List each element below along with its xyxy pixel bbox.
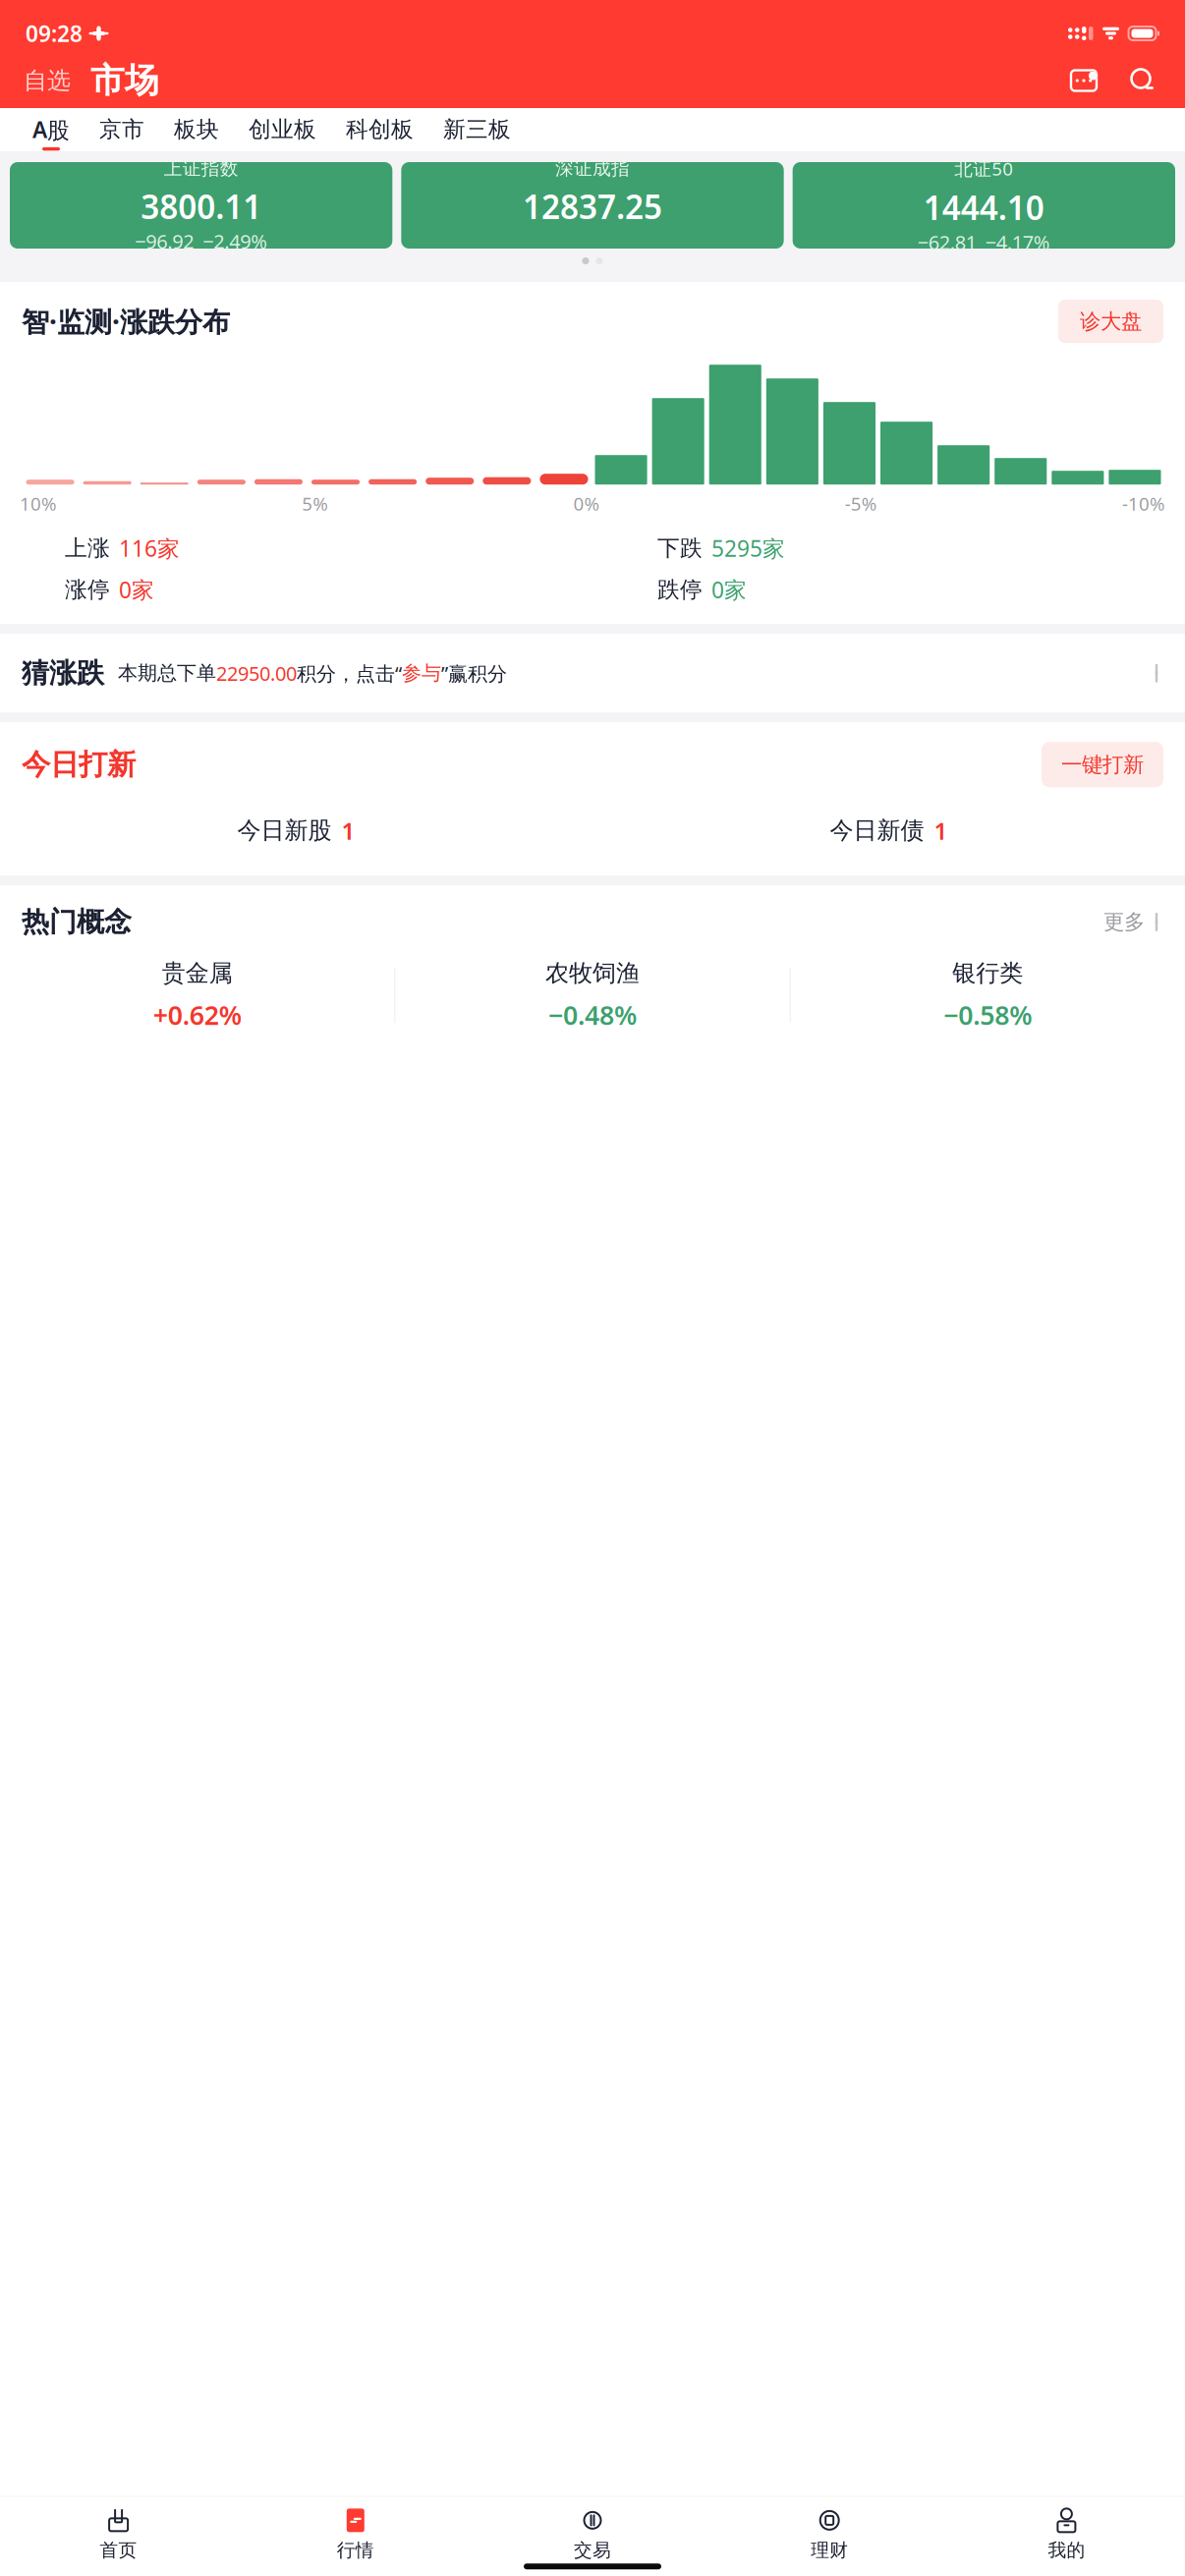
staticText: 一键打新 (1061, 752, 1144, 778)
button[interactable]: 今日新债 (592, 805, 1185, 856)
staticText: 1 (341, 815, 355, 846)
staticText: −2.49% (203, 228, 267, 254)
staticText: 农牧饲渔 (545, 959, 640, 988)
button[interactable]: 首页 (0, 2505, 237, 2563)
staticText: 热门概念 (22, 905, 132, 939)
button[interactable]: 交易 (474, 2505, 711, 2563)
staticText: 积分，点击“ (297, 660, 402, 686)
staticText: 10% (20, 491, 57, 516)
staticText: 0家 (119, 575, 154, 604)
staticText: 更多 (1103, 909, 1145, 935)
button[interactable]: 一键打新 (1042, 742, 1163, 787)
staticText: 本期总下单 (118, 661, 216, 685)
staticText: 22950.00 (216, 660, 297, 686)
staticText: 5% (302, 491, 328, 516)
staticText: 智·监测·涨跌分布 (22, 303, 230, 340)
staticText: 今日新债 (830, 816, 924, 845)
staticText: A股 (32, 115, 70, 144)
staticText: 今日新股 (237, 816, 332, 845)
staticText: 今日打新 (22, 747, 136, 782)
staticText: 板块 (174, 116, 219, 143)
button[interactable]: Search (1124, 62, 1161, 99)
staticText: 交易 (574, 2539, 611, 2561)
staticText: 3800.11 (141, 185, 262, 228)
button[interactable]: 市场 (90, 58, 159, 103)
staticText: ”赢积分 (441, 660, 507, 686)
staticText: 诊大盘 (1080, 308, 1142, 334)
staticText: 1444.10 (923, 186, 1044, 229)
staticText: 自选 (24, 66, 71, 95)
button[interactable]: 深证成指 (401, 162, 784, 249)
button[interactable]: 理财 (711, 2505, 948, 2563)
staticText: 上证指数 (164, 157, 238, 180)
staticText: 理财 (811, 2539, 848, 2561)
button[interactable]: 自选 (24, 60, 71, 101)
button[interactable]: 贵金属 (0, 955, 394, 1036)
staticText: −96.92 (135, 228, 194, 254)
button[interactable]: 银行类 (791, 955, 1185, 1036)
staticText: 参与 (402, 661, 441, 685)
staticText: 首页 (100, 2539, 137, 2561)
button[interactable]: Messages (1063, 62, 1104, 99)
button[interactable]: 猜涨跌 (0, 634, 1185, 712)
staticText: 新三板 (443, 116, 511, 143)
staticText: 跌停 (657, 576, 703, 603)
staticText: 0% (573, 491, 600, 516)
staticText: 猜涨跌 (22, 656, 104, 690)
staticText: 下跌 (657, 535, 703, 562)
staticText: 贵金属 (162, 959, 233, 988)
staticText: −4.17% (985, 229, 1050, 255)
button[interactable]: 创业板 (234, 110, 331, 149)
staticText: 5295家 (711, 533, 785, 563)
button[interactable]: 科创板 (331, 110, 428, 149)
staticText: 创业板 (249, 116, 316, 143)
staticText: −0.48% (548, 997, 637, 1032)
button[interactable]: 板块 (159, 110, 234, 149)
button[interactable]: 农牧饲渔 (395, 955, 790, 1036)
button[interactable]: 京市 (85, 110, 159, 149)
button[interactable]: 我的 (948, 2505, 1185, 2563)
staticText: 上涨 (65, 535, 110, 562)
button[interactable]: A股 (18, 109, 85, 151)
staticText: 116家 (119, 533, 180, 563)
button[interactable]: 今日新股 (0, 805, 592, 856)
staticText: +0.62% (153, 997, 241, 1032)
staticText: 涨停 (65, 576, 110, 603)
button[interactable]: 诊大盘 (1058, 300, 1163, 343)
staticText: 京市 (99, 116, 144, 143)
staticText: 北证50 (954, 156, 1013, 181)
staticText: 1 (934, 815, 948, 846)
staticText: 银行类 (952, 959, 1023, 988)
button[interactable]: 更多 (1103, 909, 1163, 935)
staticText: −0.58% (944, 997, 1032, 1032)
staticText: 09:28 (26, 19, 83, 48)
staticText: −62.81 (918, 229, 976, 255)
staticText: 市场 (90, 60, 159, 101)
staticText: -5% (845, 491, 877, 516)
staticText: 0家 (711, 575, 747, 604)
staticText: 科创板 (346, 116, 414, 143)
staticText: 深证成指 (555, 157, 630, 180)
staticText: 行情 (337, 2539, 374, 2561)
button[interactable]: 新三板 (428, 110, 526, 149)
staticText: 我的 (1048, 2539, 1085, 2561)
button[interactable]: 上证指数 (10, 162, 392, 249)
button[interactable]: 行情 (237, 2505, 474, 2563)
button[interactable]: 北证50 (793, 162, 1175, 249)
staticText: 12837.25 (523, 185, 662, 228)
staticText: -10% (1122, 491, 1165, 516)
